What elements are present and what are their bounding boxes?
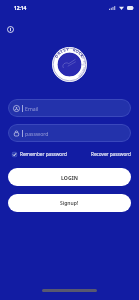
- button[interactable]: password: [8, 124, 131, 142]
- button[interactable]: Remember password: [12, 151, 67, 157]
- button[interactable]: Email: [8, 99, 131, 117]
- staticText: Remember password: [20, 151, 67, 157]
- staticText: password: [25, 130, 49, 137]
- staticText: 12:14: [14, 5, 27, 12]
- button[interactable]: Signup!: [8, 194, 131, 212]
- button[interactable]: Info: [4, 23, 17, 36]
- staticText: LOGIN: [61, 174, 78, 181]
- button[interactable]: Recover password: [91, 151, 131, 157]
- button[interactable]: LOGIN: [8, 168, 131, 186]
- staticText: Signup!: [60, 200, 79, 207]
- staticText: Email: [25, 105, 39, 112]
- staticText: Recover password: [91, 151, 131, 157]
